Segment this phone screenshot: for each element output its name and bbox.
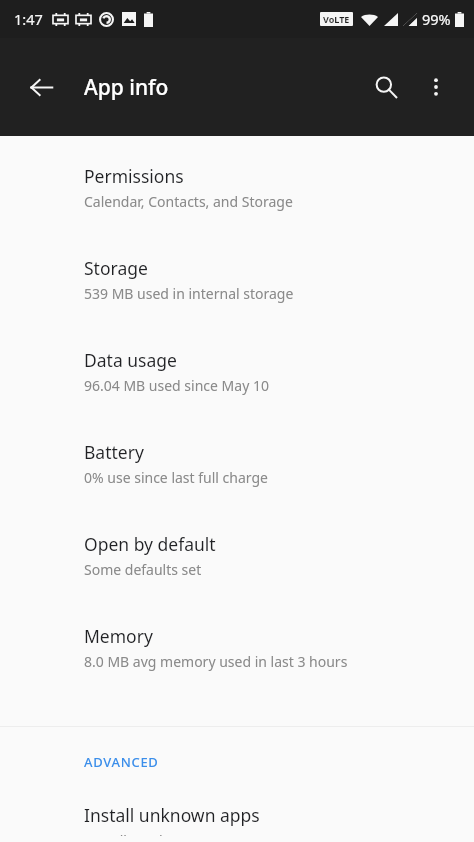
staticText: 0% use since last full charge — [84, 468, 268, 487]
staticText: 99% — [422, 9, 451, 29]
staticText: 8.0 MB avg memory used in last 3 hours — [84, 652, 348, 671]
staticText: VoLTE — [323, 13, 350, 25]
staticText: Not allowed — [84, 831, 163, 836]
staticText: Storage — [84, 256, 148, 280]
button[interactable]: Back — [17, 63, 65, 111]
staticText: Some defaults set — [84, 560, 202, 579]
button[interactable]: More options — [412, 63, 460, 111]
button[interactable]: Battery — [0, 434, 474, 526]
button[interactable]: Search — [362, 63, 410, 111]
staticText: Calendar, Contacts, and Storage — [84, 192, 293, 211]
staticText: 539 MB used in internal storage — [84, 284, 294, 303]
button[interactable]: Open by default — [0, 526, 474, 618]
staticText: Open by default — [84, 532, 216, 556]
staticText: 1:47 — [14, 9, 43, 29]
button[interactable]: Storage — [0, 250, 474, 342]
button[interactable]: Memory — [0, 618, 474, 710]
staticText: App info — [84, 73, 169, 102]
staticText: 96.04 MB used since May 10 — [84, 376, 269, 395]
staticText: Install unknown apps — [84, 803, 260, 827]
staticText: Memory — [84, 624, 153, 648]
button[interactable]: Data usage — [0, 342, 474, 434]
staticText: Data usage — [84, 348, 177, 372]
button[interactable]: Permissions — [0, 158, 474, 250]
staticText: ADVANCED — [84, 753, 159, 771]
button[interactable]: Install unknown apps — [0, 797, 474, 842]
staticText: Battery — [84, 440, 144, 464]
staticText: Permissions — [84, 164, 184, 188]
